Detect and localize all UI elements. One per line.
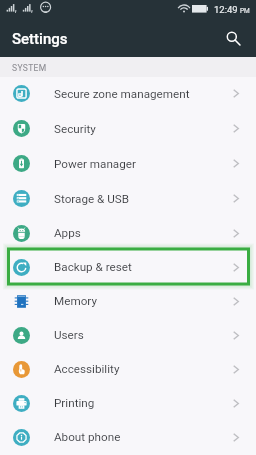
button[interactable]: Backup & reset [0,250,256,284]
button[interactable]: Printing [0,386,256,420]
staticText: About phone [54,430,121,444]
staticText: Apps [54,226,81,240]
button[interactable]: Search [218,23,248,53]
button[interactable]: Storage & USB [0,181,256,216]
staticText: Printing [54,396,95,410]
button[interactable]: Apps [0,216,256,250]
staticText: Accessibility [54,362,120,376]
button[interactable]: Power manager [0,146,256,181]
button[interactable]: Security [0,111,256,146]
button[interactable]: Secure zone management [0,76,256,111]
staticText: Memory [54,294,97,308]
button[interactable]: Memory [0,284,256,318]
button[interactable]: Users [0,318,256,352]
staticText: Backup & reset [54,260,132,274]
staticText: Power manager [54,157,136,171]
button[interactable]: Accessibility [0,352,256,386]
staticText: PM [240,7,250,15]
staticText: 12:49 [214,4,238,15]
staticText: Security [54,122,96,136]
button[interactable]: About phone [0,420,256,454]
staticText: Secure zone management [54,87,190,101]
staticText: Storage & USB [54,192,130,206]
staticText: Users [54,328,84,342]
staticText: Settings [12,30,68,48]
staticText: SYSTEM [12,63,47,73]
